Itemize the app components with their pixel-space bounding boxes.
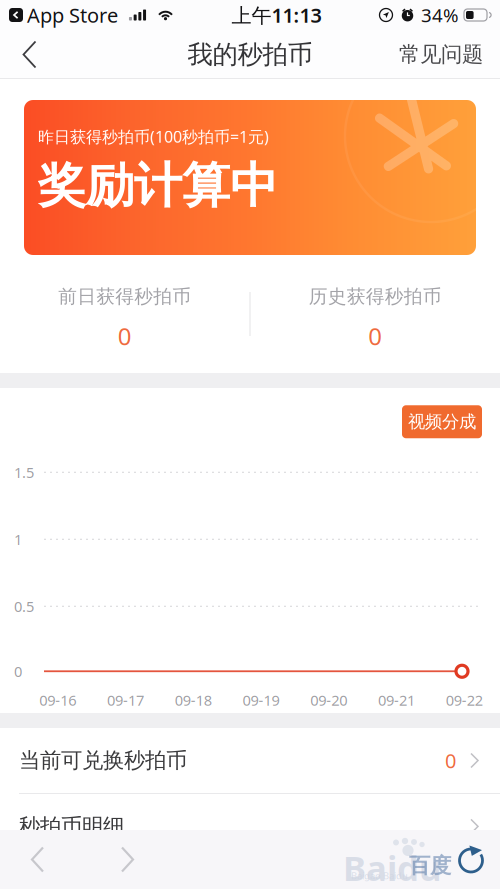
button[interactable]: 后退	[0, 834, 65, 884]
staticText: App Store	[27, 2, 118, 28]
button[interactable]: 秒拍币明细	[0, 794, 500, 859]
staticText: 0	[445, 747, 456, 774]
staticText: 0	[14, 661, 22, 681]
staticText: 09-18	[175, 690, 212, 710]
staticText: 09-19	[242, 690, 279, 710]
staticText: 上午11:13	[231, 2, 321, 28]
staticText: 09-22	[446, 690, 483, 710]
staticText: 1.5	[14, 462, 34, 482]
staticText: Baidu	[343, 844, 442, 889]
staticText: 34%	[421, 3, 459, 27]
staticText: 09-21	[378, 690, 415, 710]
staticText: Baigao Baidu	[351, 869, 408, 882]
staticText: 1	[14, 529, 22, 549]
button[interactable]: 当前可兑换秒拍币	[0, 728, 500, 793]
staticText: 历史获得秒拍币	[309, 285, 442, 308]
staticText: 0.5	[14, 596, 34, 616]
staticText: 视频分成	[408, 411, 476, 432]
staticText: 0	[368, 320, 382, 352]
staticText: 百度	[409, 852, 451, 879]
button[interactable]: 前进	[65, 834, 155, 884]
button[interactable]: 常见问题	[385, 29, 500, 80]
staticText: 我的秒拍币	[187, 39, 312, 70]
staticText: 09-16	[39, 690, 76, 710]
button[interactable]: 刷新	[451, 836, 491, 882]
staticText: 奖励计算中	[38, 156, 278, 215]
button[interactable]: 视频分成	[402, 405, 482, 438]
staticText: 前日获得秒拍币	[58, 285, 191, 308]
staticText: 当前可兑换秒拍币	[19, 747, 187, 774]
staticText: 常见问题	[399, 41, 483, 68]
staticText: 0	[118, 320, 132, 352]
button[interactable]: 返回	[0, 30, 53, 78]
staticText: 秒拍币明细	[19, 813, 124, 839]
staticText: 09-17	[107, 690, 144, 710]
staticText: 昨日获得秒拍币(100秒拍币=1元)	[38, 126, 269, 147]
staticText: 09-20	[310, 690, 347, 710]
